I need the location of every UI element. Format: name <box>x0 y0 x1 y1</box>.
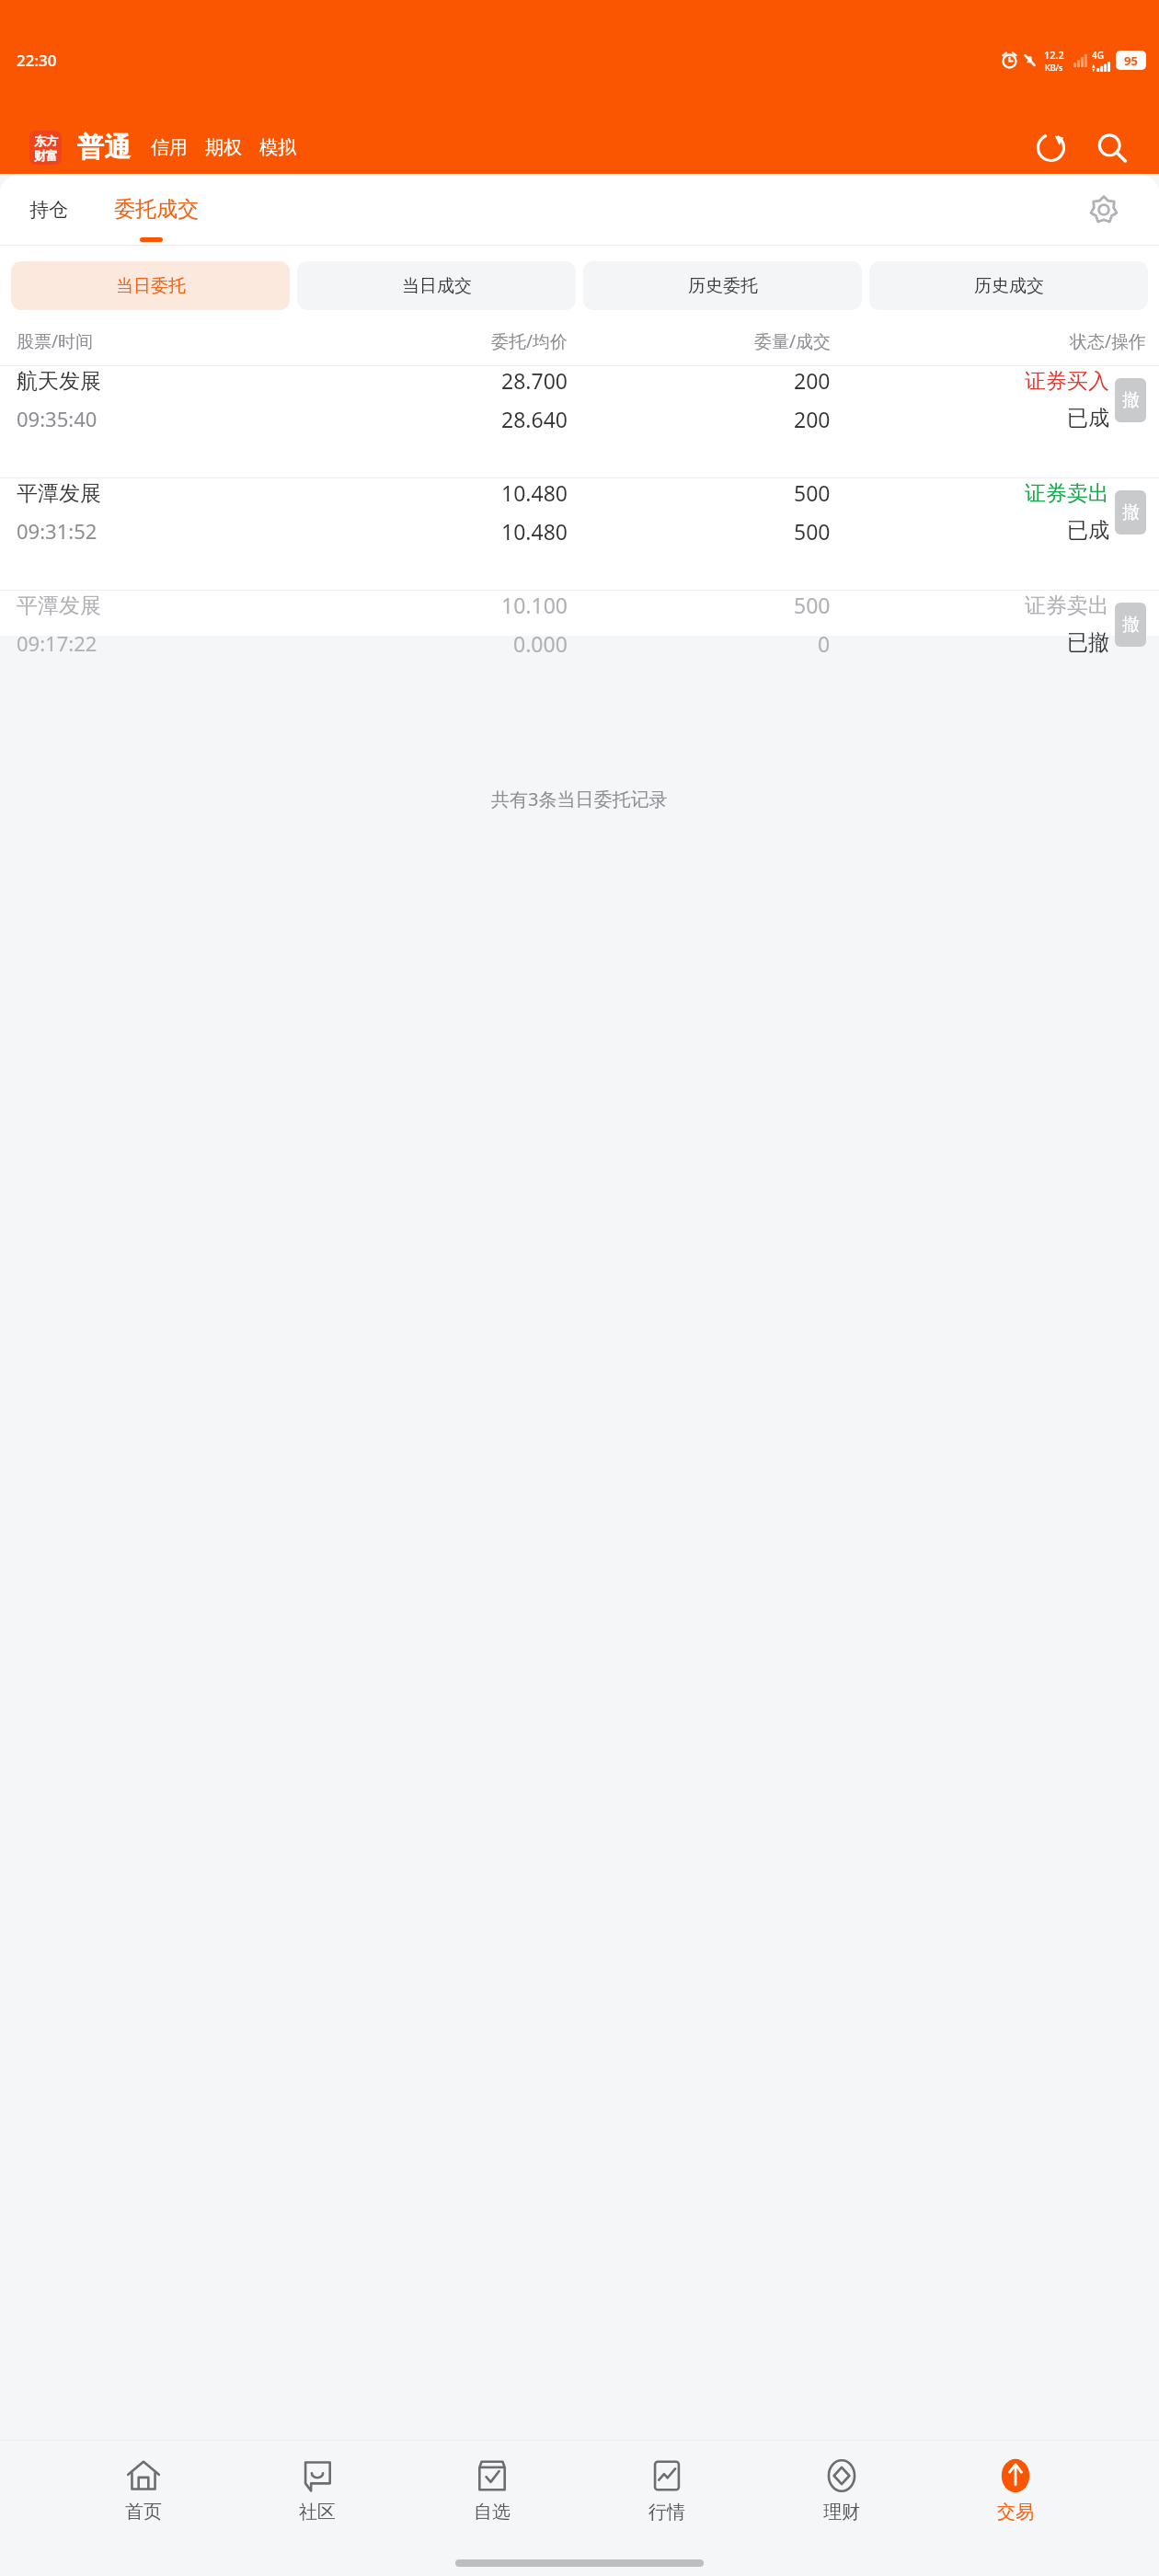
button[interactable]: 理财 <box>810 2454 873 2527</box>
staticText: 航天发展 <box>17 368 101 395</box>
staticText: 95 <box>1124 52 1138 69</box>
button[interactable]: 撤 <box>1115 490 1146 535</box>
staticText: 平潭发展 <box>17 480 101 507</box>
staticText: 09:31:52 <box>17 517 98 545</box>
staticText: 已成 <box>1067 517 1109 544</box>
staticText: 10.480 <box>501 478 568 507</box>
staticText: 平潭发展 <box>17 592 101 619</box>
staticText: 4G <box>1092 49 1104 62</box>
button[interactable]: 信用 <box>151 136 188 159</box>
button[interactable]: 历史成交 <box>869 261 1148 310</box>
button[interactable]: 航天发展 <box>0 366 1159 477</box>
staticText: 期权 <box>205 136 242 159</box>
staticText: 历史委托 <box>688 275 758 297</box>
staticText: 已撤 <box>1067 629 1109 656</box>
staticText: 证券卖出 <box>1025 592 1109 619</box>
button[interactable]: 自选 <box>461 2454 523 2527</box>
staticText: 证券卖出 <box>1025 480 1109 507</box>
staticText: 信用 <box>151 136 188 159</box>
staticText: 28.640 <box>501 405 568 433</box>
button[interactable]: 当日委托 <box>11 261 290 310</box>
staticText: 交易 <box>997 2501 1034 2524</box>
staticText: 股票/时间 <box>17 329 292 353</box>
staticText: 自选 <box>474 2501 511 2524</box>
staticText: 0.000 <box>513 629 568 658</box>
staticText: 200 <box>794 405 831 433</box>
staticText: 社区 <box>299 2501 336 2524</box>
staticText: 模拟 <box>259 136 296 159</box>
staticText: 0 <box>818 629 831 658</box>
staticText: 当日成交 <box>402 275 472 297</box>
staticText: 10.100 <box>501 591 568 619</box>
staticText: 财富 <box>34 148 58 163</box>
staticText: 09:17:22 <box>17 629 98 657</box>
staticText: 500 <box>794 591 831 619</box>
button[interactable]: 撤 <box>1115 603 1146 647</box>
button[interactable]: 设置 <box>1078 184 1130 236</box>
button[interactable]: 平潭发展 <box>0 591 1159 702</box>
staticText: 状态/操作 <box>831 329 1146 353</box>
button[interactable]: 刷新 <box>1030 127 1071 167</box>
button[interactable]: 社区 <box>286 2454 349 2527</box>
staticText: 理财 <box>823 2501 860 2524</box>
button[interactable]: 委托成交 <box>101 187 212 232</box>
staticText: 撤 <box>1122 389 1140 411</box>
staticText: 共有3条当日委托记录 <box>491 787 668 811</box>
staticText: 东方 <box>34 133 58 148</box>
staticText: 09:35:40 <box>17 405 98 432</box>
staticText: 历史成交 <box>974 275 1044 297</box>
staticText: 行情 <box>648 2501 685 2524</box>
button[interactable]: 行情 <box>636 2454 698 2527</box>
staticText: 撤 <box>1122 614 1140 636</box>
staticText: 200 <box>794 366 831 395</box>
staticText: 证券买入 <box>1025 368 1109 395</box>
staticText: 22:30 <box>17 50 57 71</box>
staticText: 500 <box>794 517 831 546</box>
staticText: 10.480 <box>501 517 568 546</box>
button[interactable]: 期权 <box>205 136 242 159</box>
button[interactable]: 模拟 <box>259 136 296 159</box>
staticText: 500 <box>794 478 831 507</box>
button[interactable]: 普通 <box>77 131 131 165</box>
staticText: 委托/均价 <box>292 329 568 353</box>
staticText: 委量/成交 <box>568 329 831 353</box>
staticText: 首页 <box>125 2501 162 2524</box>
button[interactable]: 历史委托 <box>583 261 862 310</box>
staticText: 持仓 <box>29 198 68 222</box>
button[interactable]: 交易 <box>984 2454 1047 2527</box>
staticText: 委托成交 <box>114 196 199 223</box>
button[interactable]: 当日成交 <box>297 261 576 310</box>
button[interactable]: 平潭发展 <box>0 478 1159 590</box>
staticText: 12.2 <box>1044 48 1064 62</box>
button[interactable]: 撤 <box>1115 378 1146 422</box>
staticText: 普通 <box>77 131 131 165</box>
button[interactable]: 首页 <box>112 2454 175 2527</box>
staticText: 28.700 <box>501 366 568 395</box>
staticText: KB/s <box>1045 62 1063 73</box>
button[interactable]: 搜索 <box>1091 127 1131 167</box>
staticText: 已成 <box>1067 405 1109 431</box>
staticText: 当日委托 <box>116 275 186 297</box>
staticText: 撤 <box>1122 501 1140 523</box>
button[interactable]: 持仓 <box>9 189 88 231</box>
